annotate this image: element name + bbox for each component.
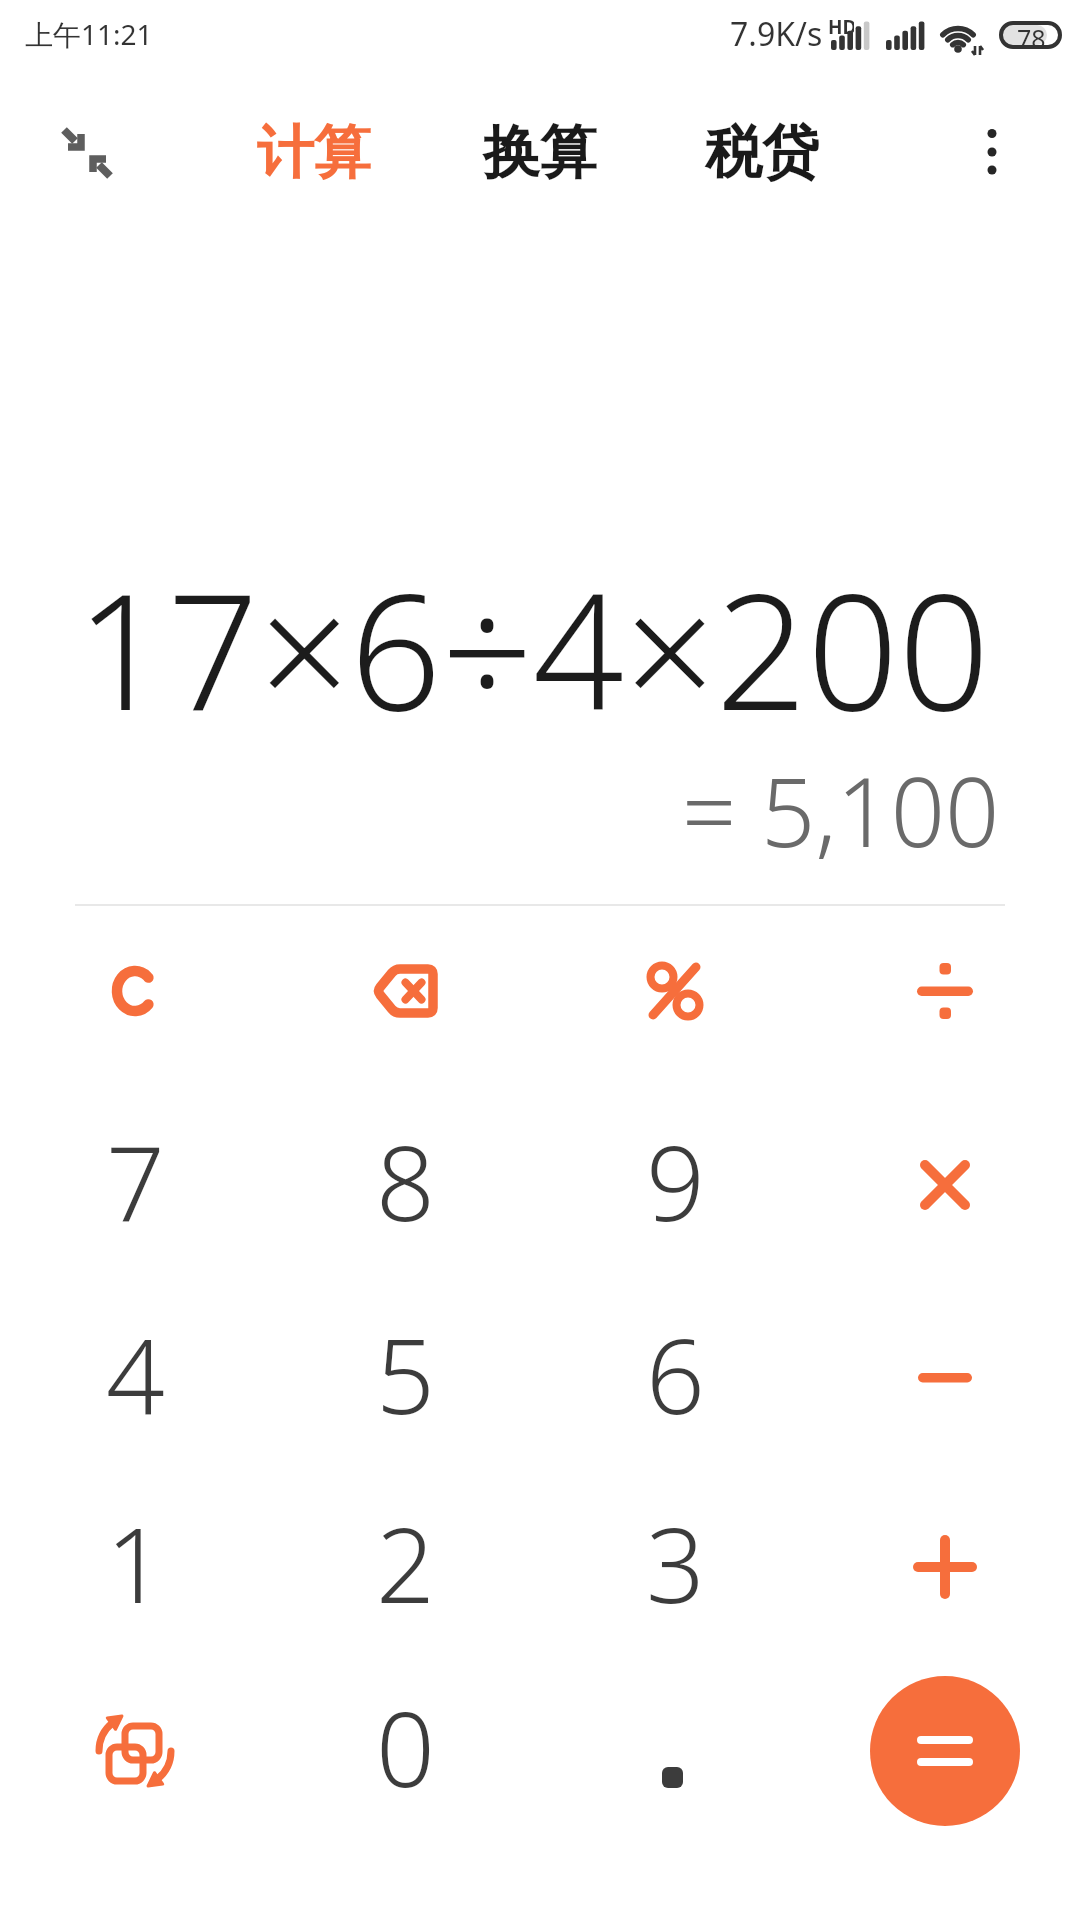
staticText: 7.9K/s (730, 12, 823, 56)
button[interactable] (63, 129, 111, 177)
button[interactable]: 1 (53, 1485, 217, 1649)
button[interactable] (978, 122, 1006, 182)
button[interactable] (870, 1676, 1020, 1826)
staticText: 17×6÷4×200 (76, 539, 990, 757)
button[interactable]: 2 (323, 1485, 487, 1649)
staticText: 6 (646, 1304, 705, 1444)
staticText: 8 (376, 1111, 435, 1251)
staticText: 7 (106, 1111, 165, 1251)
button[interactable] (863, 1296, 1027, 1460)
staticText: = 5,100 (682, 745, 1000, 874)
staticText: 4 (106, 1304, 165, 1444)
button[interactable]: 0 (323, 1669, 487, 1833)
staticText: 0 (376, 1677, 435, 1817)
button[interactable]: 计算 (256, 115, 371, 191)
button[interactable]: 税贷 (704, 115, 819, 191)
button[interactable] (53, 909, 217, 1073)
staticText: 5 (376, 1304, 435, 1444)
staticText: 3 (646, 1493, 705, 1633)
button[interactable] (863, 1485, 1027, 1649)
button[interactable]: 5 (323, 1296, 487, 1460)
button[interactable] (593, 909, 757, 1073)
staticText: 计算 (257, 117, 371, 189)
staticText: 78 (1017, 21, 1046, 49)
staticText: 税贷 (705, 117, 819, 189)
staticText: 换算 (483, 117, 597, 189)
button[interactable] (863, 909, 1027, 1073)
staticText: 9 (646, 1111, 705, 1251)
button[interactable]: 9 (593, 1103, 757, 1267)
button[interactable] (593, 1669, 757, 1833)
button[interactable] (53, 1669, 217, 1833)
button[interactable] (863, 1103, 1027, 1267)
button[interactable]: 3 (593, 1485, 757, 1649)
button[interactable]: 换算 (482, 115, 597, 191)
button[interactable]: 6 (593, 1296, 757, 1460)
button[interactable]: 4 (53, 1296, 217, 1460)
staticText: 1 (106, 1493, 165, 1633)
button[interactable] (323, 909, 487, 1073)
staticText: 上午11:21 (25, 15, 153, 53)
button[interactable]: 7 (53, 1103, 217, 1267)
staticText: 2 (376, 1493, 435, 1633)
button[interactable]: 8 (323, 1103, 487, 1267)
staticText: HD (828, 14, 854, 34)
